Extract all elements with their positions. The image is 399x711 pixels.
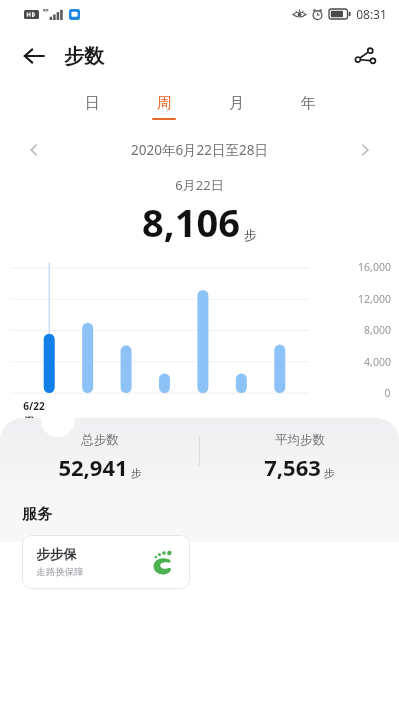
staticText: 步数 bbox=[64, 44, 104, 69]
staticText: 周六 bbox=[286, 423, 306, 436]
staticText: 年 bbox=[301, 94, 316, 113]
staticText: 8,106 bbox=[142, 196, 240, 248]
staticText: 服务 bbox=[22, 505, 52, 524]
staticText: 步 bbox=[324, 466, 335, 480]
staticText: 日 bbox=[85, 94, 100, 113]
staticText: 周 bbox=[157, 94, 172, 113]
staticText: 8,000 bbox=[364, 323, 391, 337]
staticText: 步 bbox=[244, 227, 257, 243]
staticText: 总步数 bbox=[81, 432, 119, 448]
button[interactable]: 周 bbox=[143, 90, 185, 124]
staticText: 16,000 bbox=[358, 260, 391, 274]
staticText: 4,000 bbox=[364, 355, 391, 369]
staticText: 12,000 bbox=[358, 292, 391, 306]
staticText: 走路换保障 bbox=[36, 566, 84, 578]
staticText: 08:31 bbox=[356, 6, 387, 22]
staticText: 周一 bbox=[24, 415, 44, 428]
button[interactable]: Next week bbox=[347, 132, 383, 168]
button[interactable]: 平均步数 bbox=[200, 432, 399, 482]
staticText: 步步保 bbox=[36, 546, 77, 563]
staticText: 6/22 bbox=[23, 399, 45, 413]
button[interactable]: 月 bbox=[215, 90, 257, 124]
staticText: 0 bbox=[384, 386, 391, 400]
button[interactable]: Share bbox=[343, 34, 387, 78]
staticText: 月 bbox=[229, 94, 244, 113]
button[interactable]: 日 bbox=[71, 90, 113, 124]
button[interactable]: Previous week bbox=[16, 132, 52, 168]
button[interactable]: 总步数 bbox=[0, 432, 199, 482]
button[interactable]: 年 bbox=[287, 90, 329, 124]
button[interactable]: 步步保 bbox=[22, 535, 190, 589]
staticText: 52,941 bbox=[58, 452, 128, 482]
staticText: 7,563 bbox=[264, 452, 321, 482]
staticText: 步 bbox=[131, 466, 142, 480]
staticText: 6月22日 bbox=[175, 176, 224, 194]
staticText: 平均步数 bbox=[275, 432, 325, 448]
staticText: 周二 bbox=[77, 423, 97, 436]
staticText: 2020年6月22日至28日 bbox=[131, 141, 268, 159]
button[interactable]: Back bbox=[12, 34, 56, 78]
